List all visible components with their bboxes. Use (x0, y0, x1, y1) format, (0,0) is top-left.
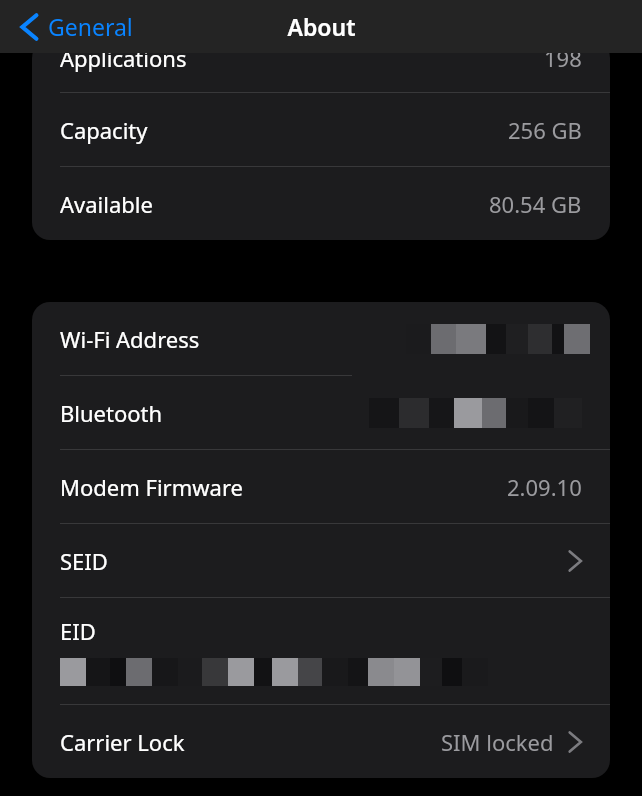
button[interactable]: Carrier Lock (32, 705, 610, 778)
button[interactable]: Wi-Fi Address (32, 302, 610, 375)
staticText: SIM locked (441, 727, 554, 757)
button[interactable]: Available (32, 167, 610, 240)
staticText: EID (60, 616, 96, 646)
staticText: Capacity (60, 115, 148, 145)
button[interactable]: SEID, show details (32, 524, 610, 597)
button[interactable]: Applications (32, 40, 610, 92)
staticText: About (287, 11, 356, 42)
staticText: Modem Firmware (60, 472, 243, 502)
button[interactable]: Capacity (32, 93, 610, 166)
staticText: Carrier Lock (60, 727, 185, 757)
staticText: Wi-Fi Address (60, 324, 200, 354)
staticText: 80.54 GB (489, 189, 582, 219)
staticText: Available (60, 189, 153, 219)
button[interactable]: General (0, 0, 244, 53)
staticText: 198 (544, 43, 582, 73)
button[interactable]: EID (32, 598, 610, 704)
staticText: SEID (60, 546, 108, 576)
button[interactable]: Modem Firmware (32, 450, 610, 523)
button[interactable]: Bluetooth (32, 376, 610, 449)
staticText: 2.09.10 (507, 472, 582, 502)
staticText: General (48, 11, 133, 42)
staticText: Applications (60, 43, 187, 73)
staticText: 256 GB (508, 115, 582, 145)
staticText: Bluetooth (60, 398, 163, 428)
